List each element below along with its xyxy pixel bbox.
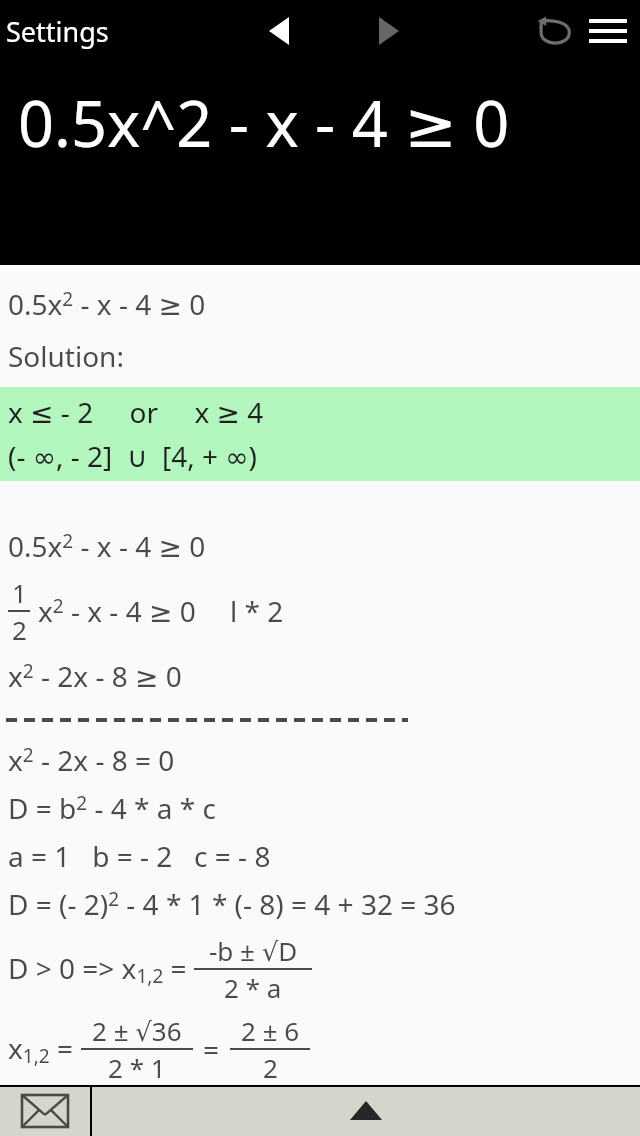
- staticText: -b ± √D: [209, 933, 298, 968]
- staticText: 2 * 1: [108, 1050, 166, 1085]
- staticText: 2 ± 6: [241, 1013, 300, 1048]
- staticText: D = (- 2)2 - 4 * 1 * (- 8) = 4 + 32 = 36: [8, 885, 456, 923]
- button[interactable]: Menu: [580, 3, 636, 59]
- staticText: 1: [12, 575, 27, 610]
- staticText: D = b2 - 4 * a * c: [8, 789, 216, 827]
- button[interactable]: Settings: [0, 13, 115, 50]
- staticText: x2 - 2x - 8 = 0: [8, 741, 175, 779]
- staticText: (- ∞, - 2] ∪ [4, + ∞): [8, 437, 257, 475]
- staticText: l * 2: [230, 592, 284, 630]
- staticText: 0.5x^2 - x - 4 ≥ 0: [18, 80, 510, 166]
- staticText: x1,2 =: [8, 1029, 81, 1069]
- staticText: D > 0 => x1,2 =: [8, 949, 194, 989]
- staticText: x2 - x - 4 ≥ 0: [38, 592, 196, 630]
- button[interactable]: Scroll up: [92, 1085, 640, 1136]
- staticText: =: [203, 1030, 220, 1068]
- staticText: Settings: [6, 13, 109, 50]
- staticText: 0.5x2 - x - 4 ≥ 0: [8, 527, 206, 565]
- button[interactable]: Next: [365, 7, 413, 55]
- staticText: 2: [12, 612, 27, 647]
- button[interactable]: Undo: [528, 5, 580, 57]
- button[interactable]: Mail: [0, 1085, 90, 1136]
- staticText: Solution:: [8, 337, 124, 375]
- staticText: 2 * a: [224, 970, 282, 1005]
- staticText: 2: [263, 1050, 278, 1085]
- staticText: 0.5x2 - x - 4 ≥ 0: [8, 285, 206, 323]
- staticText: x ≤ - 2 or x ≥ 4: [8, 393, 264, 431]
- staticText: a = 1 b = - 2 c = - 8: [8, 837, 271, 875]
- staticText: 2 ± √36: [92, 1013, 182, 1048]
- button[interactable]: Previous: [255, 7, 303, 55]
- staticText: x2 - 2x - 8 ≥ 0: [8, 657, 182, 695]
